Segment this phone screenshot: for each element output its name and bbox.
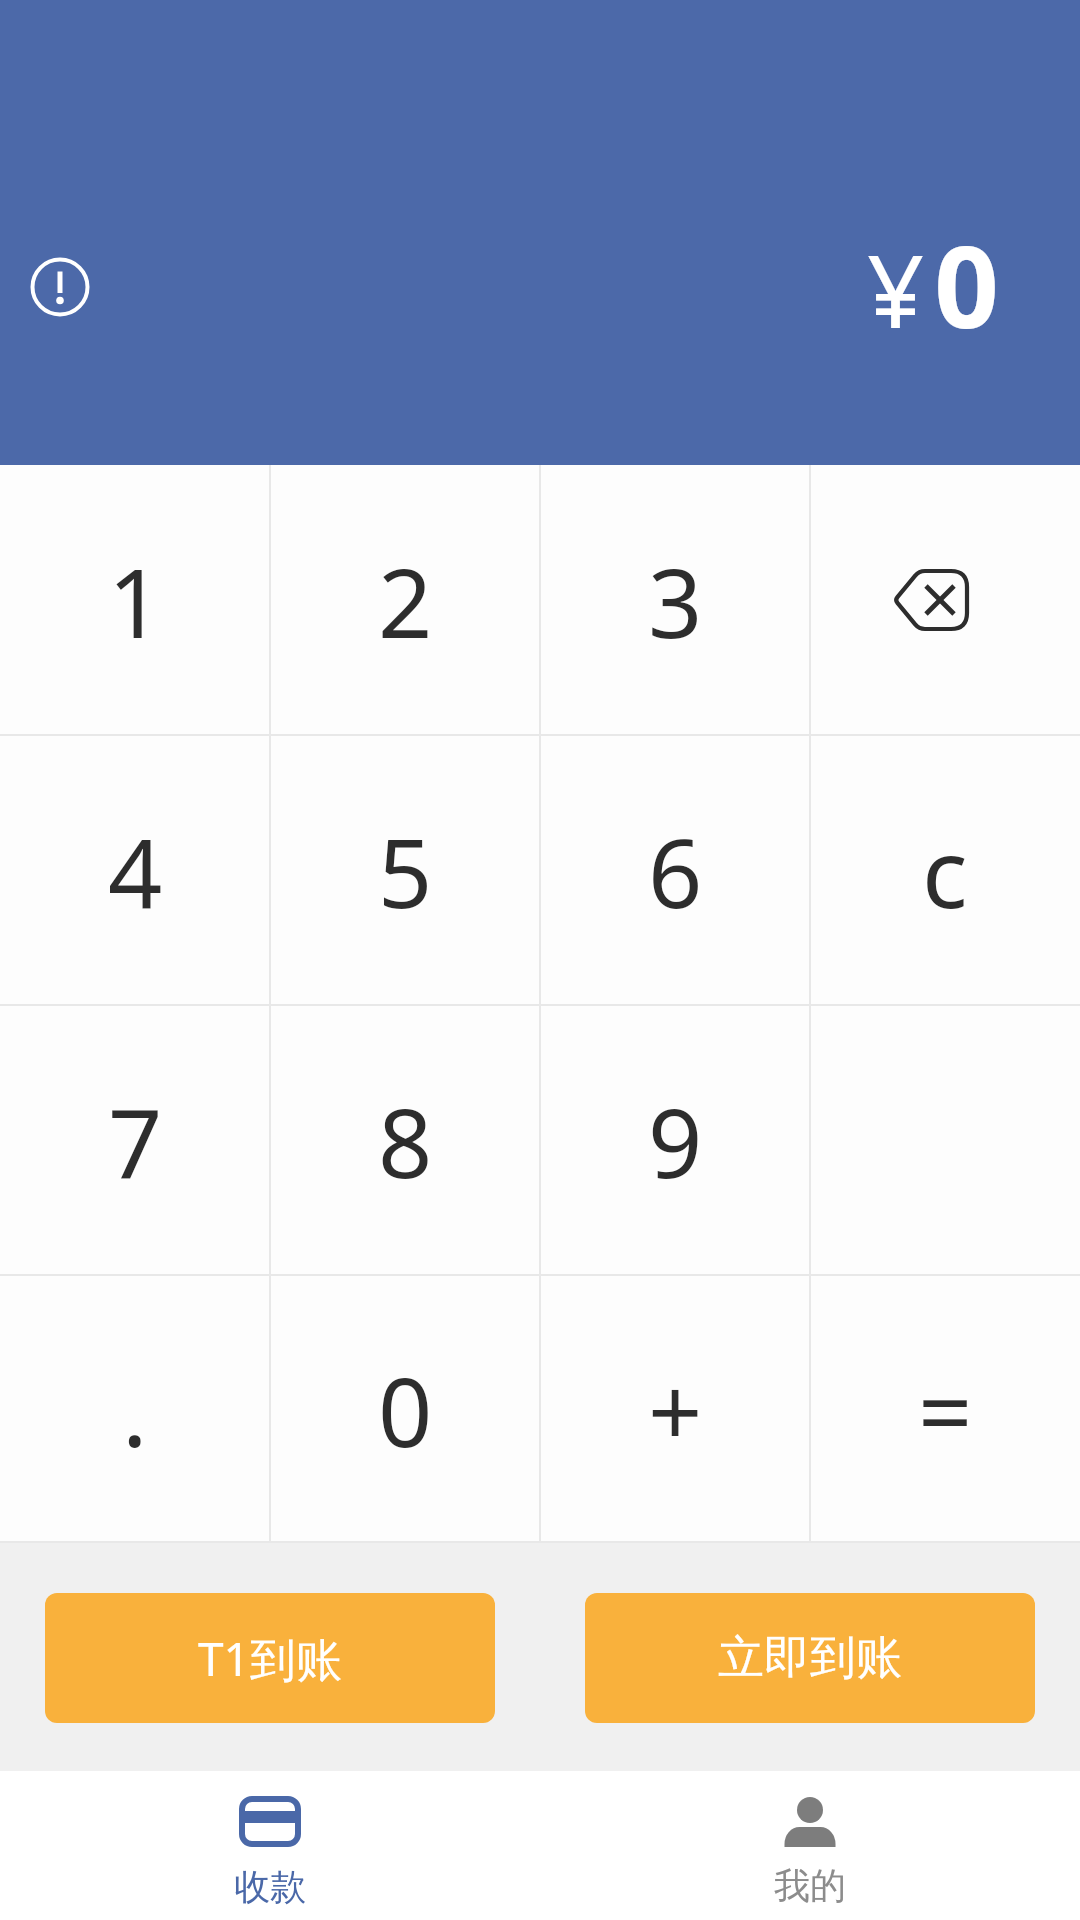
staticText: 2 xyxy=(378,536,433,665)
button[interactable]: 我的 xyxy=(540,1771,1080,1920)
staticText: ¥0 xyxy=(867,207,999,361)
button[interactable]: 1 xyxy=(0,465,270,735)
button[interactable]: c xyxy=(810,735,1080,1005)
button[interactable]: 立即到账 xyxy=(585,1593,1035,1723)
button[interactable]: + xyxy=(540,1275,810,1543)
button[interactable]: 收款 xyxy=(0,1771,540,1920)
staticText: = xyxy=(918,1345,973,1474)
staticText: 8 xyxy=(378,1076,433,1205)
button[interactable]: T1到账 xyxy=(45,1593,495,1723)
button[interactable]: 0 xyxy=(270,1275,540,1543)
staticText: 9 xyxy=(648,1076,703,1205)
staticText: 5 xyxy=(378,806,433,935)
button[interactable]: . xyxy=(0,1275,270,1543)
button[interactable]: 6 xyxy=(540,735,810,1005)
staticText: + xyxy=(648,1345,703,1474)
staticText: . xyxy=(122,1345,148,1474)
staticText: 0 xyxy=(378,1345,433,1474)
staticText: 4 xyxy=(108,806,163,935)
staticText: T1到账 xyxy=(198,1627,342,1690)
button[interactable]: 2 xyxy=(270,465,540,735)
button[interactable] xyxy=(30,257,90,317)
button[interactable]: 8 xyxy=(270,1005,540,1275)
button[interactable]: 4 xyxy=(0,735,270,1005)
button[interactable]: 5 xyxy=(270,735,540,1005)
staticText: 7 xyxy=(108,1076,163,1205)
staticText: 收款 xyxy=(234,1864,306,1909)
button[interactable]: = xyxy=(810,1275,1080,1543)
staticText: 3 xyxy=(648,536,703,665)
staticText: 6 xyxy=(648,806,703,935)
staticText: 1 xyxy=(108,536,163,665)
button[interactable]: 7 xyxy=(0,1005,270,1275)
staticText: 立即到账 xyxy=(718,1629,902,1687)
button[interactable] xyxy=(810,465,1080,735)
staticText: 我的 xyxy=(774,1863,846,1908)
staticText: c xyxy=(922,806,968,935)
button[interactable]: 3 xyxy=(540,465,810,735)
button[interactable]: 9 xyxy=(540,1005,810,1275)
